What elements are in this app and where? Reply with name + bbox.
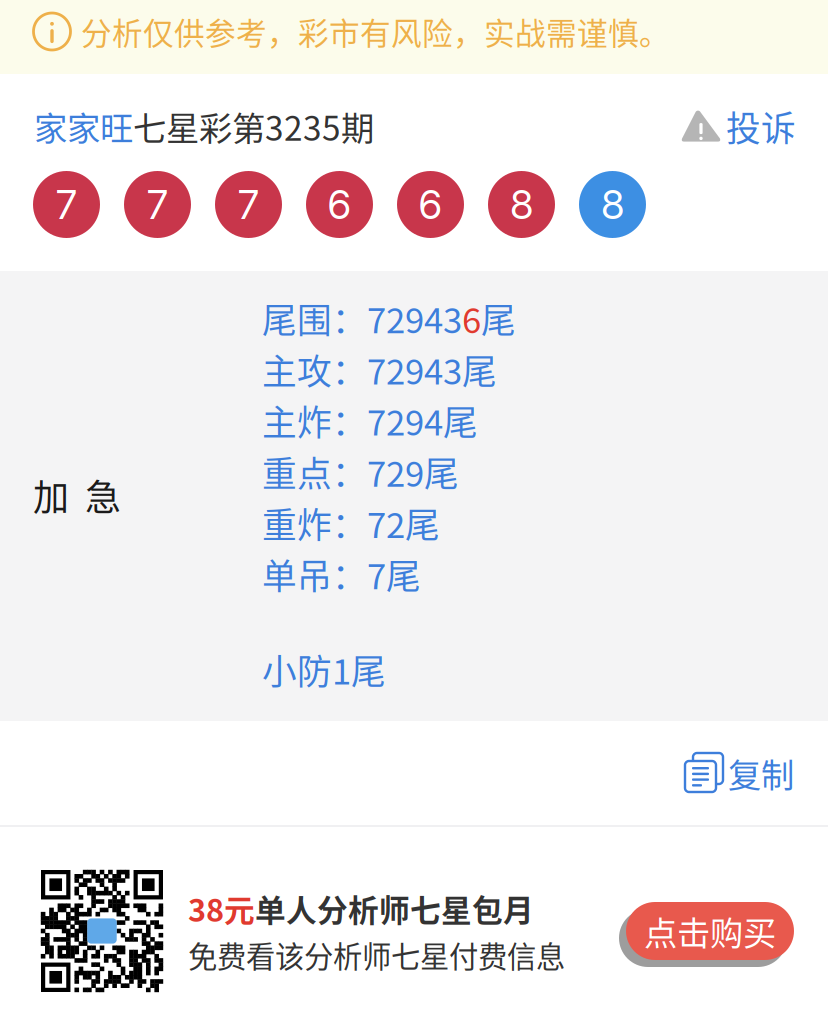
- staticText: 单人分析师七星包月: [255, 886, 534, 930]
- staticText: 38元: [188, 886, 255, 930]
- staticText: 加 急: [33, 469, 121, 521]
- staticText: 重炸：72尾: [262, 498, 440, 548]
- staticText: 单吊：7尾: [262, 549, 421, 599]
- staticText: 尾围：72943: [262, 293, 462, 343]
- staticText: 投诉: [726, 101, 796, 151]
- staticText: 分析仅供参考，彩市有风险，实战需谨慎。: [81, 9, 670, 54]
- staticText: 重点：729尾: [262, 447, 459, 497]
- button[interactable]: 投诉: [679, 91, 796, 161]
- staticText: 7: [147, 180, 168, 229]
- staticText: 8: [601, 180, 624, 229]
- staticText: 7: [238, 180, 259, 229]
- staticText: 复制: [728, 749, 794, 797]
- button[interactable]: 复制: [684, 737, 794, 809]
- staticText: 7: [56, 180, 77, 229]
- staticText: 6: [327, 180, 351, 229]
- staticText: 6: [418, 180, 442, 229]
- staticText: 尾: [481, 293, 516, 343]
- staticText: 主攻：72943尾: [262, 344, 497, 394]
- staticText: 家家旺: [34, 102, 133, 150]
- staticText: 8: [510, 180, 533, 229]
- staticText: 6: [462, 293, 481, 343]
- staticText: 七星彩第3235期: [133, 102, 374, 150]
- staticText: 小防1尾: [262, 644, 386, 694]
- staticText: 点击购买: [644, 907, 776, 955]
- staticText: 免费看该分析师七星付费信息: [188, 933, 565, 976]
- button[interactable]: 点击购买: [619, 893, 801, 969]
- staticText: 主炸：7294尾: [262, 395, 478, 446]
